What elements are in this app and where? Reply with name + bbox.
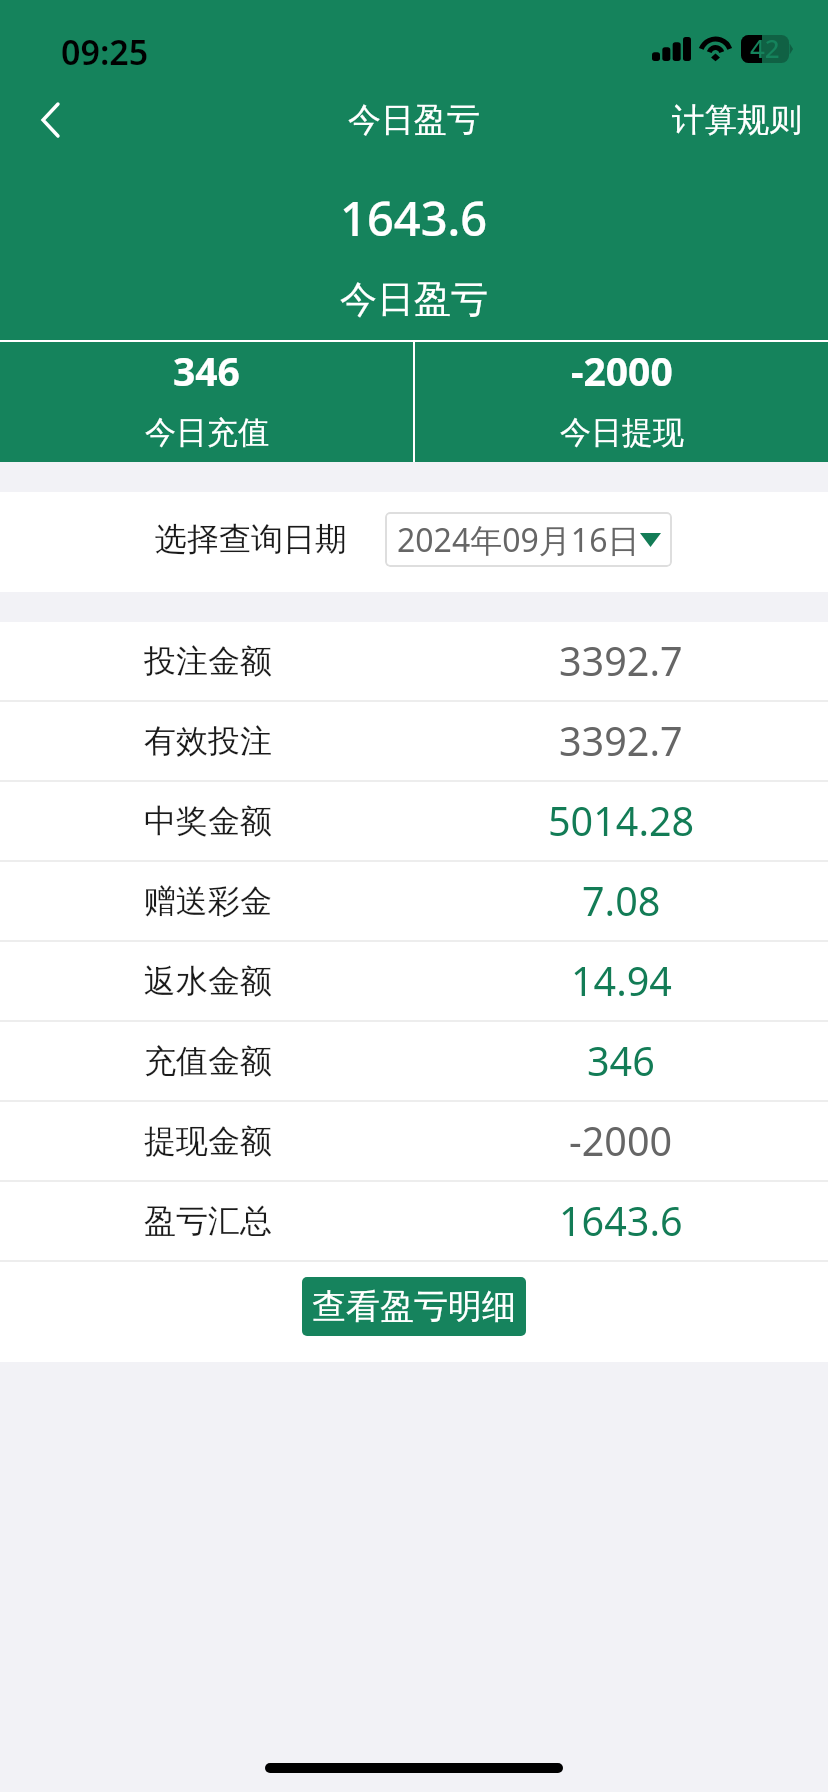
staticText: 返水金额 [144, 961, 272, 1001]
other: Wi-Fi [699, 36, 732, 62]
button[interactable]: 充值金额 [0, 1022, 828, 1100]
staticText: 今日盈亏 [348, 99, 480, 141]
button[interactable]: 查看盈亏明细 [302, 1277, 526, 1336]
staticText: 提现金额 [144, 1121, 272, 1161]
staticText: 42 [750, 30, 780, 58]
staticText: 今日盈亏 [340, 276, 488, 323]
button[interactable]: 有效投注 [0, 702, 828, 780]
staticText: 1643.6 [559, 1194, 683, 1248]
staticText: 3392.7 [559, 714, 683, 768]
staticText: 选择查询日期 [155, 519, 347, 559]
staticText: 7.08 [582, 874, 661, 928]
staticText: 14.94 [571, 954, 672, 1008]
other: Battery 42 percent [741, 35, 795, 63]
button[interactable]: Back [0, 84, 96, 156]
staticText: 2024年09月16日 [397, 518, 640, 562]
button[interactable]: 赠送彩金 [0, 862, 828, 940]
staticText: 盈亏汇总 [144, 1201, 272, 1241]
staticText: 查看盈亏明细 [312, 1285, 516, 1328]
button[interactable]: 346 [0, 342, 413, 462]
staticText: 346 [173, 344, 240, 397]
button[interactable]: -2000 [415, 342, 828, 462]
staticText: 3392.7 [559, 634, 683, 688]
button[interactable]: 2024年09月16日 [385, 512, 672, 567]
staticText: 1643.6 [340, 186, 488, 250]
staticText: 346 [587, 1034, 655, 1088]
button[interactable]: 盈亏汇总 [0, 1182, 828, 1260]
button[interactable]: 提现金额 [0, 1102, 828, 1180]
staticText: -2000 [571, 344, 673, 397]
staticText: 充值金额 [144, 1041, 272, 1081]
staticText: 5014.28 [548, 794, 695, 848]
staticText: 有效投注 [144, 721, 272, 761]
staticText: 今日提现 [560, 413, 684, 452]
staticText: -2000 [569, 1114, 673, 1168]
other: Cellular signal [652, 37, 691, 61]
button[interactable]: 返水金额 [0, 942, 828, 1020]
button[interactable]: 计算规则 [646, 84, 828, 156]
staticText: 今日充值 [145, 413, 269, 452]
staticText: 计算规则 [672, 100, 802, 140]
button[interactable]: 投注金额 [0, 622, 828, 700]
button[interactable]: 中奖金额 [0, 782, 828, 860]
staticText: 赠送彩金 [144, 881, 272, 921]
staticText: 09:25 [61, 29, 149, 75]
staticText: 中奖金额 [144, 801, 272, 841]
staticText: 投注金额 [144, 641, 272, 681]
